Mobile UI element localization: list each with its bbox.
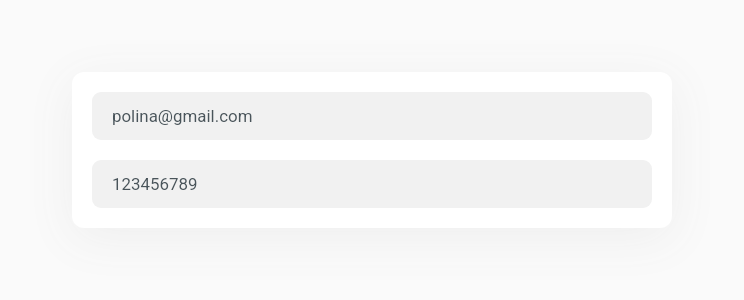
staticText: polina@gmail.com — [112, 106, 253, 126]
staticText: 123456789 — [112, 174, 198, 194]
button[interactable]: 123456789 — [92, 160, 652, 208]
button[interactable]: polina@gmail.com — [92, 92, 652, 140]
